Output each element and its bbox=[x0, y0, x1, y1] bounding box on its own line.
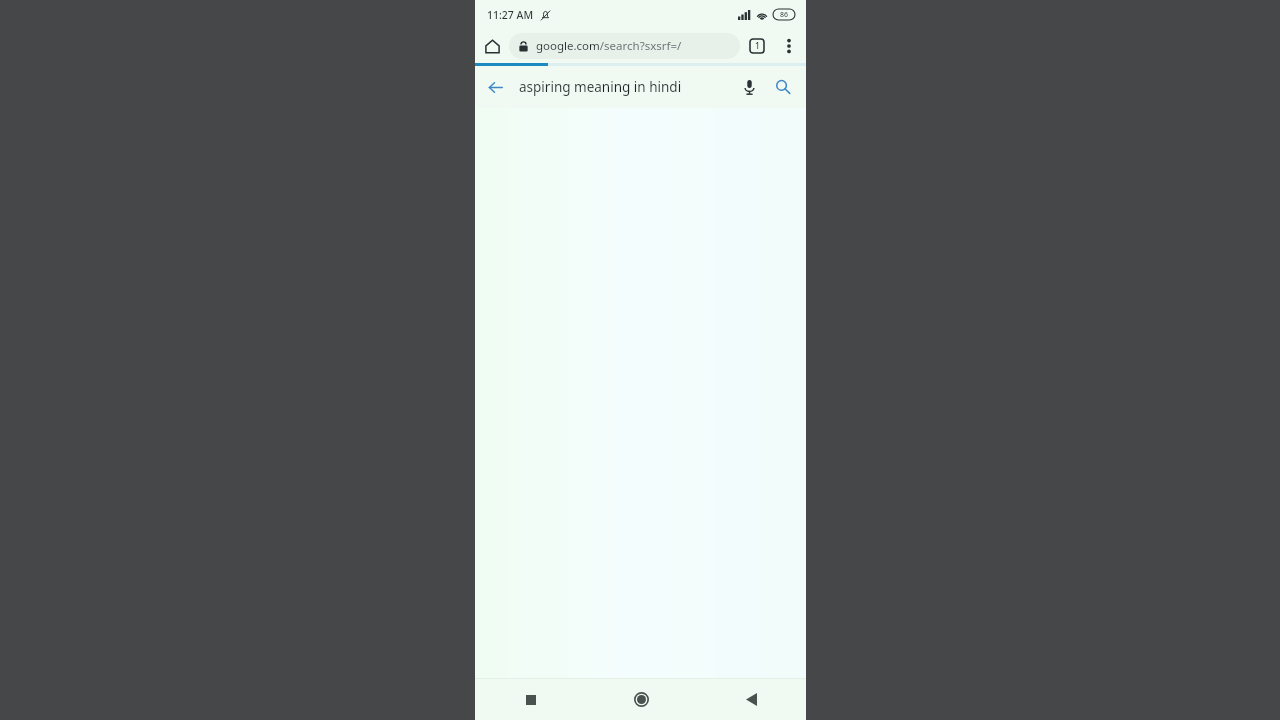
staticText: 11:27 AM bbox=[487, 8, 534, 22]
button[interactable]: Back bbox=[696, 679, 806, 720]
staticText: 86 bbox=[780, 10, 789, 20]
button[interactable]: Back bbox=[475, 67, 515, 107]
button[interactable]: More options bbox=[774, 31, 804, 61]
staticText: google.com/search?sxsrf=/ bbox=[536, 38, 682, 54]
button[interactable]: Search bbox=[766, 70, 800, 104]
button[interactable]: Voice search bbox=[732, 70, 766, 104]
button[interactable]: Home bbox=[586, 679, 696, 720]
button[interactable]: Home bbox=[475, 29, 509, 63]
button[interactable]: google.com/search?sxsrf=/ bbox=[509, 33, 740, 59]
staticText: 1 bbox=[755, 40, 760, 52]
button[interactable]: Tabs bbox=[740, 29, 774, 63]
staticText: aspiring meaning in hindi bbox=[519, 78, 732, 96]
button[interactable]: Recent apps bbox=[475, 679, 586, 720]
